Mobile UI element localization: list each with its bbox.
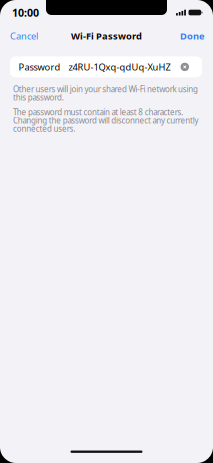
staticText: Cancel bbox=[10, 30, 38, 42]
button[interactable]: Password, z4RU-1Qxq-qdUq-XuHZ bbox=[10, 56, 202, 77]
staticText: The password must contain at least 8 cha… bbox=[13, 107, 198, 134]
button[interactable]: Done bbox=[180, 30, 205, 42]
button[interactable]: Cancel bbox=[10, 30, 38, 42]
button[interactable]: Clear text bbox=[181, 63, 189, 71]
staticText: z4RU-1Qxq-qdUq-XuHZ bbox=[68, 61, 170, 73]
staticText: Other users will join your shared Wi-Fi … bbox=[13, 84, 198, 103]
staticText: Wi-Fi Password bbox=[71, 30, 142, 42]
staticText: 10:00 bbox=[12, 5, 39, 20]
staticText: Password bbox=[18, 61, 60, 73]
staticText: Done bbox=[180, 30, 205, 42]
